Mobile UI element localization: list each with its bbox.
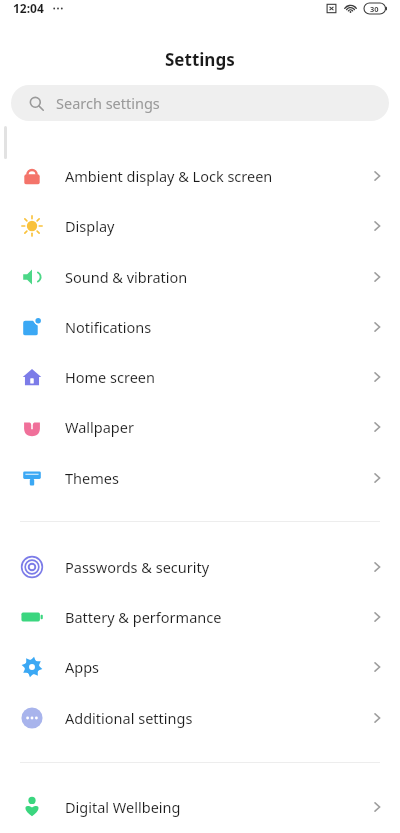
button[interactable]: Wallpaper [0,402,400,452]
staticText: Notifications [65,317,152,337]
button[interactable]: Digital Wellbeing [0,782,400,832]
button[interactable]: Home screen [0,352,400,402]
staticText: Themes [65,468,119,488]
staticText: Search settings [56,93,160,113]
staticText: Display [65,216,115,236]
button[interactable]: Apps [0,642,400,692]
button[interactable]: Display [0,201,400,251]
button[interactable]: Search settings [11,85,389,121]
button[interactable]: Battery & performance [0,592,400,642]
staticText: Passwords & security [65,557,210,577]
button[interactable]: Ambient display & Lock screen [0,151,400,201]
staticText: Ambient display & Lock screen [65,166,273,186]
button[interactable]: Passwords & security [0,542,400,592]
staticText: Battery & performance [65,607,222,627]
staticText: Apps [65,657,100,677]
button[interactable]: Notifications [0,302,400,352]
staticText: Home screen [65,367,155,387]
staticText: Sound & vibration [65,267,188,287]
button[interactable]: Sound & vibration [0,252,400,302]
staticText: 30 [370,4,379,14]
button[interactable]: Themes [0,453,400,503]
staticText: 12:04 [13,0,44,16]
staticText: Settings [165,48,235,71]
staticText: Digital Wellbeing [65,797,181,817]
staticText: Wallpaper [65,417,134,437]
staticText: Additional settings [65,708,193,728]
button[interactable]: Additional settings [0,693,400,743]
